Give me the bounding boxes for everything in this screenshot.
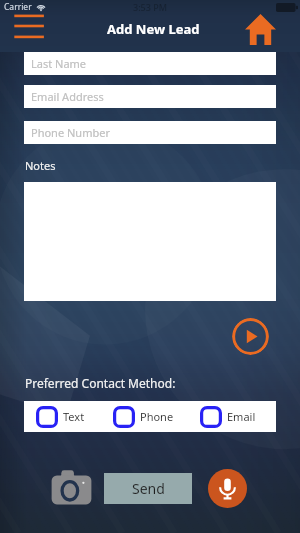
button[interactable]: Last Name — [24, 52, 276, 75]
button[interactable]: Take photo — [51, 468, 92, 508]
staticText: Last Name — [31, 56, 87, 71]
staticText: 3:53 PM — [133, 1, 167, 13]
button[interactable]: Send — [104, 473, 192, 504]
staticText: Email — [227, 409, 256, 424]
button[interactable]: Play recording — [232, 318, 269, 355]
staticText: Phone Number — [31, 125, 110, 140]
staticText: Carrier — [4, 1, 32, 13]
staticText: Add New Lead — [107, 20, 200, 38]
staticText: Email Address — [31, 89, 104, 104]
button[interactable]: Phone Number — [24, 121, 276, 144]
staticText: Preferred Contact Method: — [25, 375, 176, 391]
button[interactable]: Record voice — [208, 469, 247, 508]
button[interactable]: Home — [245, 14, 276, 45]
staticText: Send — [132, 479, 165, 498]
button[interactable]: Phone — [113, 401, 174, 432]
staticText: Notes — [25, 158, 56, 173]
staticText: Phone — [140, 409, 174, 424]
button[interactable]: Text — [36, 401, 85, 432]
staticText: Text — [63, 409, 85, 424]
button[interactable]: Open navigation menu — [12, 12, 46, 40]
button[interactable]: Email — [200, 401, 256, 432]
button[interactable]: Email Address — [24, 85, 276, 108]
